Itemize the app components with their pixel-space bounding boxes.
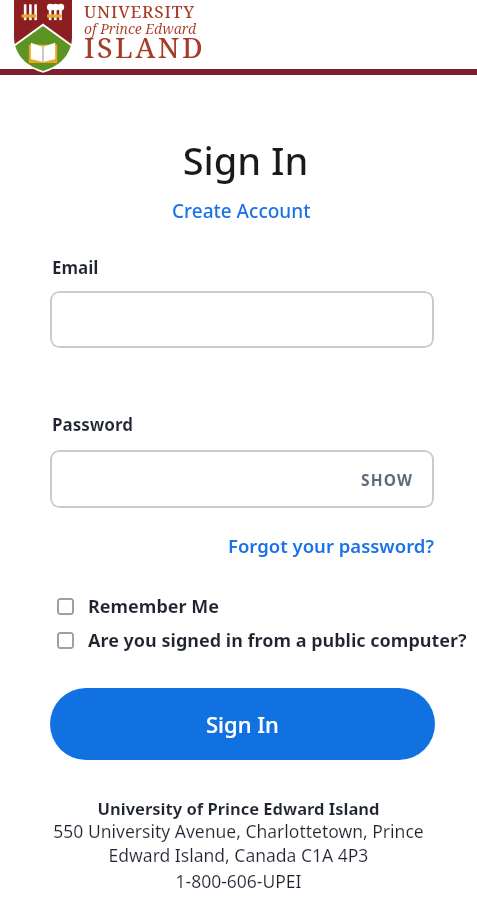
staticText: Email — [52, 256, 99, 279]
staticText: of Prince Edward — [84, 19, 197, 38]
staticText: Sign In — [206, 709, 279, 739]
button[interactable]: Forgot your password? — [228, 533, 434, 558]
staticText: SHOW — [361, 469, 414, 490]
staticText: 550 University Avenue, Charlottetown, Pr… — [0, 819, 477, 867]
staticText: Are you signed in from a public computer… — [88, 628, 467, 653]
button[interactable]: Remember Me — [57, 594, 219, 619]
staticText: ISLAND — [84, 28, 206, 66]
staticText: Sign In — [50, 134, 441, 186]
staticText: University of Prince Edward Island — [0, 797, 477, 819]
staticText: Password — [52, 413, 133, 436]
staticText: UNIVERSITY — [84, 0, 195, 23]
button[interactable] — [50, 291, 434, 348]
staticText: Remember Me — [88, 594, 219, 619]
button[interactable]: Are you signed in from a public computer… — [57, 628, 467, 653]
staticText: Forgot your password? — [228, 533, 434, 558]
button[interactable]: SHOW — [50, 450, 434, 508]
staticText: 1-800-606-UPEI — [0, 869, 477, 893]
button[interactable]: Sign In — [50, 688, 435, 760]
staticText: Create Account — [172, 198, 311, 224]
button[interactable]: Create Account — [172, 198, 311, 224]
